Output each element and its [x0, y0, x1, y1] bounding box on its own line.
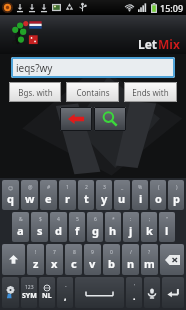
staticText: NL [42, 291, 52, 301]
button[interactable]: ) [168, 180, 184, 210]
button[interactable]: Ends with [124, 82, 177, 102]
button[interactable]: ( [150, 180, 166, 210]
staticText: ☺ [8, 185, 14, 191]
button[interactable]: 4 [50, 212, 67, 242]
button[interactable]: : [123, 212, 139, 242]
staticText: d [55, 223, 62, 238]
button[interactable]: - [57, 277, 73, 308]
staticText: q [7, 191, 14, 206]
staticText: ) [176, 184, 178, 191]
staticText: u [118, 191, 126, 206]
button[interactable]: / [122, 244, 139, 275]
button[interactable]: Shift [2, 244, 25, 275]
staticText: a [17, 223, 24, 238]
staticText: r [65, 191, 70, 206]
staticText: ; [149, 216, 151, 223]
staticText: / [130, 249, 132, 256]
staticText: Contains [76, 87, 110, 98]
staticText: i [139, 191, 143, 206]
button[interactable]: Search [94, 107, 126, 131]
button[interactable]: Backspace [60, 107, 92, 131]
button[interactable]: Language NL [39, 277, 55, 308]
button[interactable]: ' [126, 277, 142, 308]
button[interactable]: Voice input [144, 277, 160, 308]
staticText: 7 [53, 249, 56, 256]
button[interactable]: ☺ [2, 180, 19, 210]
staticText: b [108, 256, 115, 271]
button[interactable]: 3 [96, 180, 112, 210]
staticText: v [89, 256, 96, 271]
button[interactable]: ieqs?wy [11, 57, 175, 78]
staticText: $ [39, 216, 42, 223]
staticText: l [165, 223, 169, 238]
staticText: e [45, 191, 52, 206]
staticText: p [173, 191, 180, 206]
staticText: g [92, 223, 99, 238]
button[interactable]: _ [114, 180, 130, 210]
staticText: & [19, 216, 23, 223]
button[interactable]: Settings [2, 277, 19, 308]
button[interactable]: 123 SYM [21, 277, 37, 308]
staticText: w [25, 191, 35, 206]
button[interactable]: Delete [160, 244, 184, 275]
staticText: s [37, 223, 43, 238]
button[interactable]: 2 [78, 180, 94, 210]
staticText: n [127, 256, 135, 271]
staticText: j [129, 223, 133, 238]
staticText: - [65, 283, 67, 290]
staticText: 8 [73, 249, 76, 256]
button[interactable]: Bgs. with [9, 82, 61, 102]
staticText: 6 [94, 216, 97, 223]
button[interactable]: Contains [66, 82, 119, 102]
button[interactable]: $ [31, 212, 48, 242]
button[interactable]: & [12, 212, 29, 242]
staticText: ! [35, 249, 37, 256]
staticText: 5 [76, 216, 79, 223]
button[interactable]: 9 [84, 244, 101, 275]
button[interactable]: % [132, 180, 148, 210]
staticText: _ [121, 184, 124, 191]
staticText: y [101, 191, 108, 206]
button[interactable]: Enter [162, 277, 184, 308]
staticText: 15:09 [160, 2, 184, 14]
button[interactable]: ; [141, 212, 157, 242]
button[interactable]: # [40, 180, 57, 210]
button[interactable]: " [159, 212, 175, 242]
staticText: 123 [25, 284, 34, 291]
staticText: m [144, 256, 155, 271]
staticText: ieqs?wy [16, 61, 53, 75]
staticText: t [84, 191, 89, 206]
staticText: 3 [103, 184, 106, 191]
button[interactable]: 0 [103, 244, 120, 275]
staticText: % [138, 184, 143, 191]
staticText: : [130, 216, 132, 223]
staticText: 0 [110, 249, 113, 256]
staticText: 9 [91, 249, 94, 256]
staticText: c [71, 256, 77, 271]
button[interactable]: * [105, 212, 121, 242]
staticText: 2 [85, 184, 88, 191]
button[interactable]: 8 [65, 244, 82, 275]
button[interactable]: ? [141, 244, 158, 275]
staticText: o [155, 191, 162, 206]
staticText: Bgs. with [18, 87, 53, 98]
button[interactable]: 1 [59, 180, 76, 210]
staticText: Let [138, 36, 158, 52]
button[interactable]: ! [27, 244, 44, 275]
staticText: ( [158, 184, 160, 191]
staticText: * [112, 216, 115, 223]
staticText: 4 [57, 216, 60, 223]
staticText: " [166, 216, 169, 223]
button[interactable]: 5 [69, 212, 85, 242]
button[interactable]: 7 [46, 244, 63, 275]
staticText: h [109, 223, 117, 238]
staticText: Ends with [132, 87, 169, 98]
button[interactable]: 6 [87, 212, 103, 242]
staticText: x [51, 256, 58, 271]
staticText: f [75, 223, 80, 238]
staticText: 1 [66, 184, 69, 191]
staticText: ? [148, 249, 151, 256]
button[interactable]: Space [75, 277, 124, 308]
staticText: @ [28, 184, 33, 191]
button[interactable]: @ [21, 180, 38, 210]
